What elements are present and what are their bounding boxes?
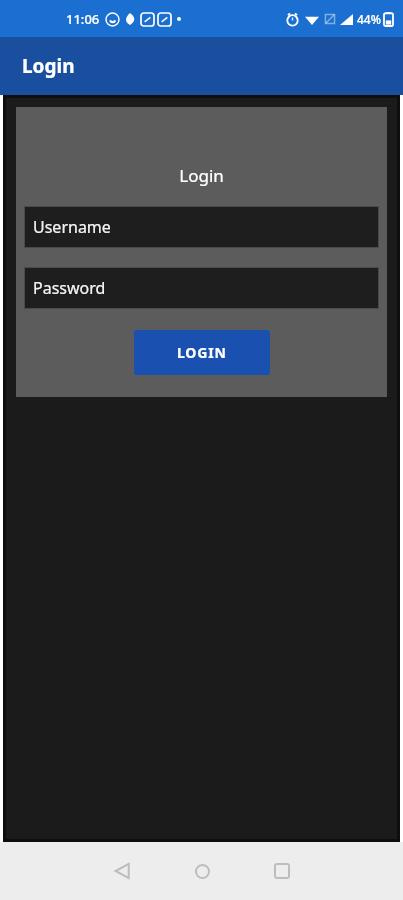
staticText: 44% [357,11,381,27]
staticText: Password [33,277,106,299]
button[interactable]: Password [25,268,378,308]
button[interactable]: Recents [252,842,312,900]
button[interactable]: Back [92,842,152,900]
button[interactable]: Username [25,207,378,247]
staticText: Login [22,53,75,79]
staticText: Username [33,216,111,238]
staticText: LOGIN [177,343,227,362]
button[interactable]: Home [172,842,232,900]
button[interactable]: LOGIN [134,330,270,375]
staticText: 11:06 [66,10,100,28]
staticText: Login [179,164,224,187]
